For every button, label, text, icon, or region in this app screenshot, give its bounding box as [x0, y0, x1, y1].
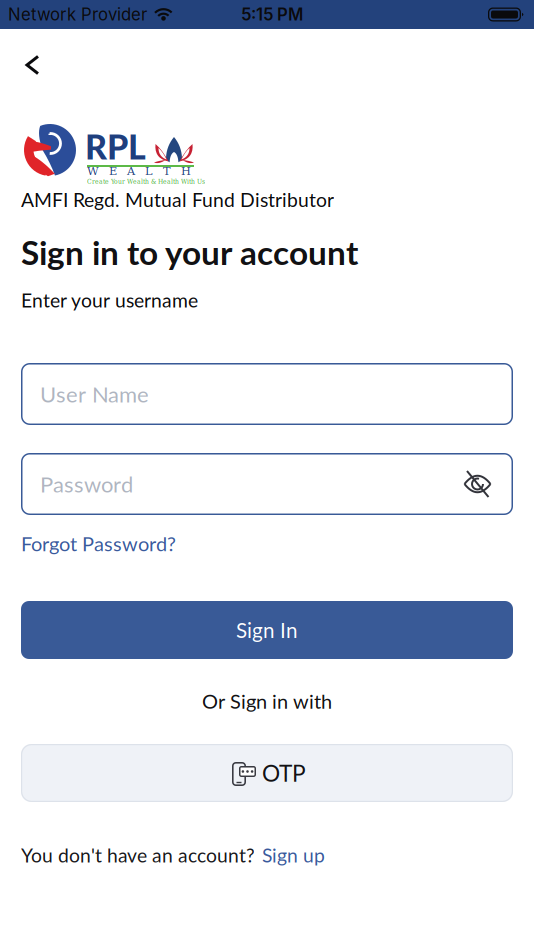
staticText: Network Provider — [8, 4, 147, 25]
staticText: Sign up — [262, 843, 325, 867]
staticText: Forgot Password? — [21, 531, 176, 555]
staticText: W E A L T H — [87, 164, 191, 178]
button[interactable]: Forgot Password? — [21, 534, 176, 553]
staticText: 5:15 PM — [241, 4, 303, 25]
staticText: Or Sign in with — [202, 689, 332, 713]
button[interactable]: User Name — [21, 363, 513, 425]
button[interactable]: Sign up — [262, 843, 325, 867]
staticText: Enter your username — [21, 288, 198, 312]
staticText: Sign In — [236, 618, 298, 642]
staticText: OTP — [262, 759, 306, 787]
staticText: You don't have an account? — [21, 843, 255, 867]
button[interactable] — [20, 55, 38, 75]
button[interactable]: Password — [21, 453, 513, 515]
button[interactable]: Sign In — [21, 601, 513, 659]
button[interactable]: OTP — [21, 744, 513, 802]
staticText: Create Your Wealth & Health With Us — [87, 177, 205, 185]
staticText: Sign in to your account — [21, 232, 358, 272]
staticText: RPL — [85, 126, 146, 167]
staticText: User Name — [40, 381, 149, 407]
staticText: Password — [40, 471, 133, 497]
staticText: AMFI Regd. Mutual Fund Distributor — [21, 188, 334, 211]
